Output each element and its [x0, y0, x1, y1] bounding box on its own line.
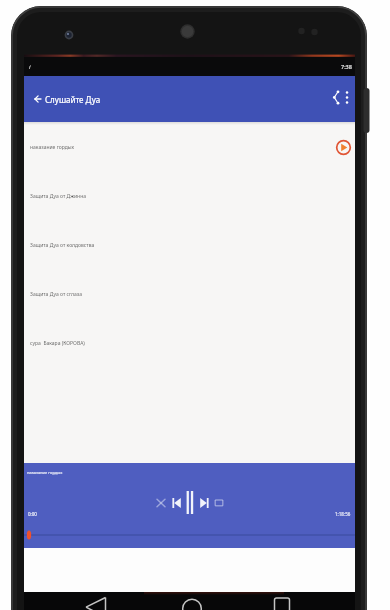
- staticText: Слушайте Дуа: [45, 94, 101, 105]
- button[interactable]: [24, 592, 135, 610]
- button[interactable]: [30, 91, 46, 107]
- staticText: сура Бакара (КОРОВА): [30, 340, 355, 347]
- staticText: Защита Дуа от колдовства: [30, 242, 355, 249]
- staticText: Защита Дуа от Джинна: [30, 193, 355, 200]
- staticText: i: [29, 63, 31, 71]
- button[interactable]: сура Бакара (КОРОВА): [24, 319, 355, 368]
- button[interactable]: Защита Дуа от колдовства: [24, 221, 355, 270]
- button[interactable]: [135, 592, 245, 610]
- button[interactable]: [245, 592, 355, 610]
- staticText: Защита Дуа от сглаза: [30, 291, 355, 298]
- button[interactable]: Защита Дуа от Джинна: [24, 172, 355, 221]
- button[interactable]: [154, 490, 168, 515]
- button[interactable]: [341, 76, 353, 122]
- staticText: 0:00: [28, 511, 37, 517]
- button[interactable]: [24, 529, 355, 541]
- button[interactable]: [329, 76, 341, 122]
- staticText: 7:38: [341, 63, 352, 70]
- staticText: наказание гордых: [27, 470, 63, 475]
- button[interactable]: [198, 490, 212, 515]
- staticText: 1:18:56: [335, 511, 351, 517]
- button[interactable]: [183, 490, 197, 515]
- button[interactable]: Защита Дуа от сглаза: [24, 270, 355, 319]
- button[interactable]: наказание гордых: [24, 123, 355, 172]
- staticText: наказание гордых: [30, 144, 335, 151]
- button[interactable]: [212, 490, 226, 515]
- button[interactable]: [169, 490, 183, 515]
